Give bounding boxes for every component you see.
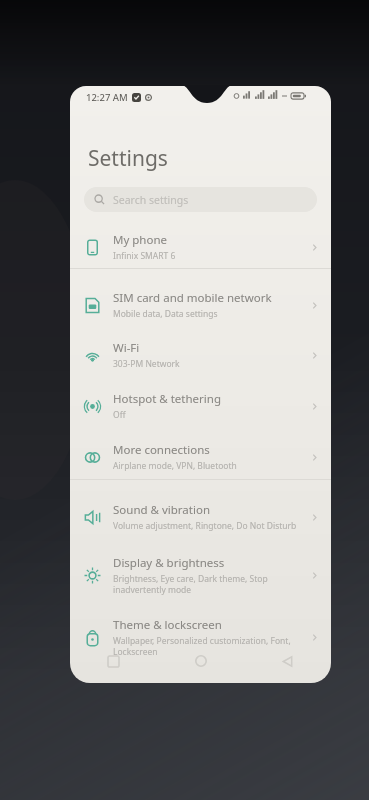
button[interactable]: SIM card and mobile network: [70, 282, 331, 328]
button[interactable]: My phone: [70, 224, 331, 270]
staticText: Infinix SMART 6: [113, 250, 176, 262]
button[interactable]: Recent apps: [70, 646, 157, 676]
staticText: Brightness, Eye care, Dark theme, Stop i…: [113, 573, 268, 595]
button[interactable]: More connections: [70, 434, 331, 480]
staticText: Volume adjustment, Ringtone, Do Not Dist…: [113, 520, 297, 532]
staticText: Settings: [88, 144, 168, 173]
staticText: Theme & lockscreen: [113, 617, 222, 633]
staticText: 12:27 AM: [86, 91, 128, 104]
button[interactable]: Display & brightness: [70, 548, 331, 602]
staticText: More connections: [113, 442, 210, 458]
staticText: Mobile data, Data settings: [113, 308, 218, 320]
staticText: Display & brightness: [113, 555, 225, 571]
staticText: Airplane mode, VPN, Bluetooth: [113, 460, 237, 472]
button[interactable]: Theme & lockscreen: [70, 614, 331, 660]
staticText: Wallpaper, Personalized customization, F…: [113, 635, 310, 657]
staticText: Sound & vibration: [113, 502, 210, 518]
staticText: SIM card and mobile network: [113, 290, 272, 306]
staticText: Wi-Fi: [113, 340, 140, 356]
button[interactable]: Sound & vibration: [70, 494, 331, 540]
button[interactable]: Back: [244, 646, 331, 676]
staticText: 303-PM Network: [113, 358, 180, 370]
button[interactable]: Hotspot & tethering: [70, 383, 331, 429]
staticText: My phone: [113, 232, 168, 248]
staticText: Hotspot & tethering: [113, 391, 221, 407]
button[interactable]: Search settings: [84, 187, 317, 212]
staticText: Off: [113, 409, 126, 421]
button[interactable]: Wi-Fi: [70, 332, 331, 378]
staticText: Search settings: [113, 193, 189, 207]
